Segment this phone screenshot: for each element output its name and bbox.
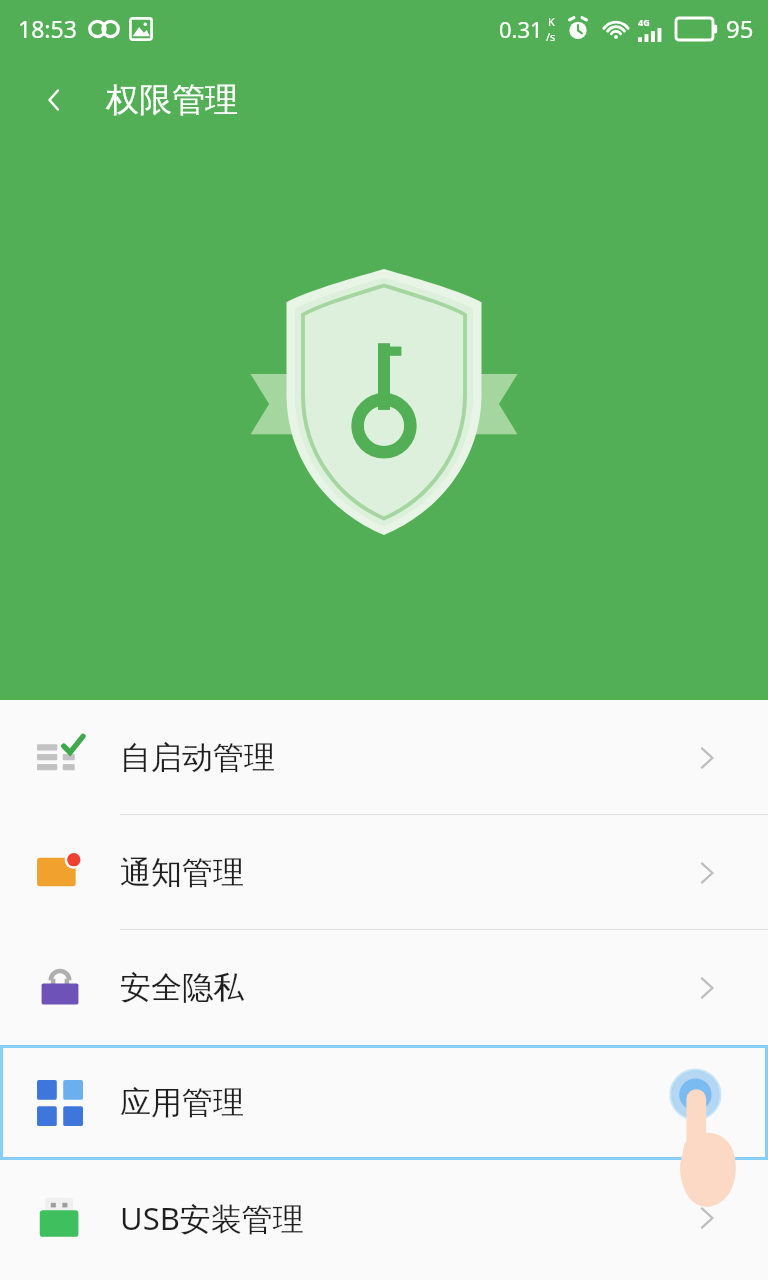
staticText: 95 bbox=[726, 12, 754, 45]
staticText: 0.31 bbox=[499, 14, 543, 44]
staticText: 权限管理 bbox=[106, 79, 238, 121]
staticText: 4G bbox=[638, 16, 650, 28]
staticText: 应用管理 bbox=[120, 1083, 244, 1122]
staticText: 通知管理 bbox=[120, 853, 244, 892]
button[interactable]: 应用管理 bbox=[0, 1045, 768, 1160]
staticText: 安全隐私 bbox=[120, 968, 244, 1007]
button[interactable]: USB安装管理 bbox=[0, 1160, 768, 1275]
button[interactable]: 自启动管理 bbox=[0, 700, 768, 815]
staticText: 自启动管理 bbox=[120, 738, 275, 777]
staticText: 18:53 bbox=[18, 13, 77, 44]
staticText: K bbox=[548, 14, 555, 29]
button[interactable]: Back bbox=[26, 72, 82, 128]
button[interactable]: 安全隐私 bbox=[0, 930, 768, 1045]
staticText: USB安装管理 bbox=[120, 1197, 304, 1239]
button[interactable]: 通知管理 bbox=[0, 815, 768, 930]
staticText: /s bbox=[546, 29, 556, 44]
